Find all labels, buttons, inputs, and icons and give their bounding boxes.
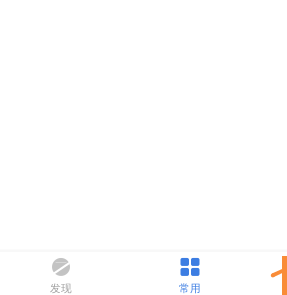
- button[interactable]: 发现: [0, 252, 122, 295]
- button[interactable]: Profile: [258, 252, 287, 295]
- staticText: 常用: [179, 282, 201, 295]
- button[interactable]: 常用: [122, 252, 258, 295]
- staticText: 发现: [50, 282, 72, 295]
